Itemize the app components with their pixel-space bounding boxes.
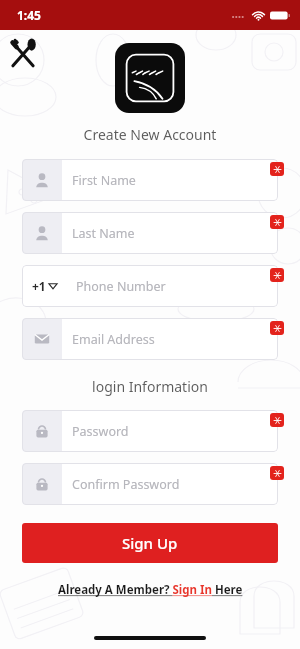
button[interactable]: Confirm Password: [22, 463, 278, 505]
staticText: Sign Up: [122, 533, 178, 553]
staticText: Phone Number: [76, 278, 166, 295]
staticText: 1:45: [17, 7, 41, 23]
staticText: Already A Member? Sign In Here: [58, 582, 243, 598]
button[interactable]: Sign Up: [22, 523, 278, 563]
staticText: Create New Account: [0, 125, 300, 144]
button[interactable]: Email Address: [22, 318, 278, 360]
button[interactable]: Menu: [5, 37, 41, 73]
staticText: First Name: [72, 172, 136, 189]
button[interactable]: Password: [22, 410, 278, 452]
button[interactable]: Already A Member? Sign In Here: [0, 582, 300, 598]
staticText: +1: [32, 278, 46, 294]
button[interactable]: Last Name: [22, 212, 278, 254]
staticText: login Information: [0, 377, 300, 396]
staticText: Confirm Password: [72, 476, 180, 493]
staticText: Password: [72, 423, 129, 440]
button[interactable]: +1: [22, 265, 278, 307]
button[interactable]: First Name: [22, 159, 278, 201]
staticText: Last Name: [72, 225, 135, 242]
staticText: Email Address: [72, 331, 155, 348]
